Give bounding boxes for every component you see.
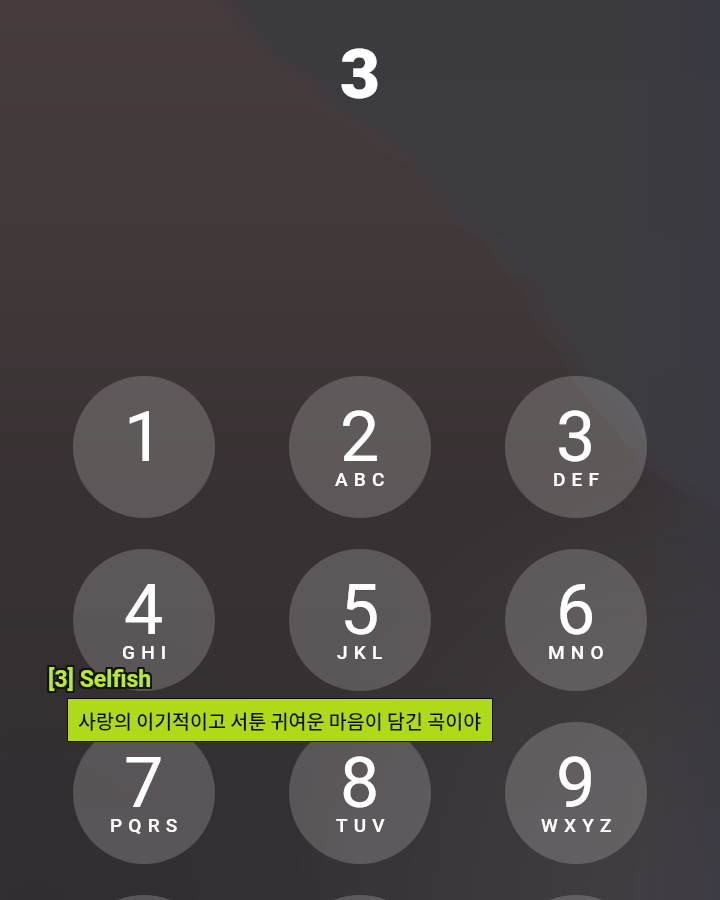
- button[interactable]: Dial key 6: [505, 549, 647, 691]
- staticText: [3] Selfish: [46, 664, 150, 691]
- staticText: [3] Selfish: [47, 666, 151, 693]
- staticText: [3] Selfish: [50, 665, 154, 692]
- staticText: [3] Selfish: [46, 665, 150, 692]
- staticText: JKL: [337, 641, 389, 663]
- staticText: 1: [124, 396, 164, 478]
- button[interactable]: Dial key #: [505, 895, 647, 900]
- staticText: 6: [556, 569, 596, 651]
- button[interactable]: Dial key 7: [73, 722, 215, 864]
- staticText: WXYZ: [541, 814, 618, 836]
- staticText: [3] Selfish: [49, 668, 153, 695]
- staticText: [3] Selfish: [50, 666, 154, 693]
- staticText: MNO: [548, 641, 610, 663]
- staticText: [3] Selfish: [50, 664, 154, 691]
- staticText: 5: [340, 569, 380, 651]
- staticText: [3] Selfish: [48, 667, 152, 694]
- button[interactable]: Dial key *: [73, 895, 215, 900]
- staticText: 9: [556, 742, 596, 824]
- button[interactable]: Dial key 1: [73, 376, 215, 518]
- staticText: 3: [556, 396, 596, 478]
- staticText: GHI: [122, 641, 173, 663]
- staticText: [3] Selfish: [48, 665, 152, 692]
- staticText: PQRS: [110, 814, 184, 836]
- staticText: [3] Selfish: [47, 668, 151, 695]
- staticText: ABC: [335, 468, 391, 490]
- staticText: [3] Selfish: [46, 667, 150, 694]
- staticText: 7: [124, 742, 164, 824]
- staticText: [3] Selfish: [47, 664, 151, 691]
- button[interactable]: Dial key 3: [505, 376, 647, 518]
- staticText: [3] Selfish: [50, 668, 154, 695]
- button[interactable]: Dial key 2: [289, 376, 431, 518]
- staticText: [3] Selfish: [49, 666, 153, 693]
- button[interactable]: Dial key 4: [73, 549, 215, 691]
- staticText: [3] Selfish: [49, 667, 153, 694]
- staticText: [3] Selfish: [46, 668, 150, 695]
- button[interactable]: Dial key 0: [289, 895, 431, 900]
- staticText: [3] Selfish: [48, 664, 152, 691]
- button[interactable]: Dial key 5: [289, 549, 431, 691]
- staticText: [3] Selfish: [49, 665, 153, 692]
- staticText: DEF: [553, 468, 606, 490]
- button[interactable]: Dial key 9: [505, 722, 647, 864]
- staticText: [3] Selfish: [47, 667, 151, 694]
- button[interactable]: Dial key 8: [289, 722, 431, 864]
- staticText: 8: [340, 742, 380, 824]
- staticText: 2: [340, 396, 380, 478]
- staticText: [3] Selfish: [50, 667, 154, 694]
- staticText: [3] Selfish: [47, 665, 151, 692]
- staticText: 4: [124, 569, 164, 651]
- staticText: [3] Selfish: [46, 666, 150, 693]
- staticText: 사랑의 이기적이고 서툰 귀여운 마음이 담긴 곡이야: [78, 706, 482, 734]
- staticText: [3] Selfish: [48, 668, 152, 695]
- staticText: 3: [0, 34, 720, 115]
- staticText: [3] Selfish: [48, 666, 152, 693]
- staticText: [3] Selfish: [49, 664, 153, 691]
- staticText: TUV: [336, 814, 391, 836]
